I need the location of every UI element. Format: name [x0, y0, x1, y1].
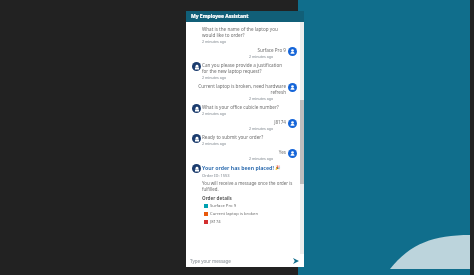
button[interactable]: Can you please provide a justification f…	[202, 62, 287, 74]
staticText: 2 minutes ago	[202, 111, 227, 116]
button[interactable]: What is your office cubicle number?	[202, 104, 279, 110]
button[interactable]: Yes	[278, 149, 286, 155]
button[interactable]: Surface Pro 9	[257, 47, 286, 53]
staticText: 2 minutes ago	[202, 39, 227, 44]
staticText: 2 minutes ago	[249, 156, 274, 161]
staticText: Order ID: 1553	[202, 173, 230, 178]
button[interactable]: Current laptop is broken, need hardware …	[190, 83, 286, 95]
staticText: You will receive a message once the orde…	[202, 180, 293, 192]
staticText: My Employee Assistant	[191, 13, 249, 20]
staticText: 2 minutes ago	[202, 75, 227, 80]
staticText: 2 minutes ago	[249, 54, 274, 59]
staticText: Ready to submit your order?	[202, 134, 264, 140]
button[interactable]: My Employee Assistant	[186, 11, 304, 22]
staticText: J8174	[210, 219, 221, 225]
staticText: Order details	[202, 195, 232, 201]
staticText: What is the name of the laptop you would…	[202, 26, 287, 38]
button[interactable]: J8174	[274, 119, 286, 125]
staticText: Surface Pro 9	[257, 47, 286, 53]
staticText: 2 minutes ago	[249, 126, 274, 131]
staticText: Yes	[278, 149, 286, 155]
staticText: Current laptop is broken, need hardware …	[190, 83, 286, 95]
staticText: Surface Pro 9	[210, 203, 237, 209]
staticText: What is your office cubicle number?	[202, 104, 279, 110]
staticText: Type your message	[190, 258, 292, 264]
staticText: Can you please provide a justification f…	[202, 62, 287, 74]
button[interactable]: Send	[292, 257, 300, 265]
staticText: 🎉	[275, 165, 281, 170]
button[interactable]: Surface Pro 9	[202, 203, 293, 209]
staticText: J8174	[274, 119, 286, 125]
staticText: 2 minutes ago	[249, 96, 274, 101]
button[interactable]: J8174	[202, 219, 293, 225]
staticText: 2 minutes ago	[202, 141, 227, 146]
button[interactable]: What is the name of the laptop you would…	[202, 26, 287, 38]
button[interactable]: Ready to submit your order?	[202, 134, 264, 140]
staticText: Current laptop is broken	[210, 211, 258, 217]
staticText: Your order has been placed!	[202, 164, 274, 171]
button[interactable]: Current laptop is broken	[202, 211, 293, 217]
